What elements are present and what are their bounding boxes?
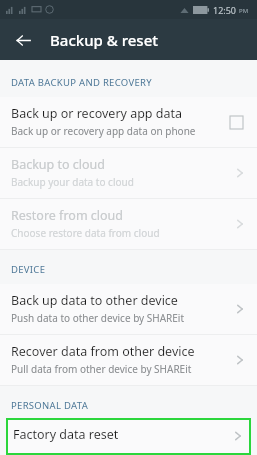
button[interactable]: Back up or recovery app data — [0, 97, 257, 147]
button[interactable]: Back up or recovery app data toggle — [225, 111, 247, 133]
staticText: 12:50 — [213, 4, 237, 16]
button[interactable]: Back up data to other device — [0, 284, 257, 334]
staticText: Back up or recovery app data on phone — [11, 124, 196, 138]
staticText: DATA BACKUP AND RECOVERY — [11, 76, 152, 89]
staticText: Back up data to other device — [11, 292, 178, 309]
staticText: Push data to other device by SHAREit — [11, 311, 185, 325]
button[interactable]: Factory data reset — [6, 418, 251, 455]
staticText: Recover data from other device — [11, 343, 195, 360]
staticText: Pull data from other device by SHAREit — [11, 362, 192, 376]
button[interactable]: Back — [9, 26, 37, 54]
staticText: Restore from cloud — [11, 207, 124, 224]
staticText: PM — [239, 7, 249, 15]
staticText: Backup your data to cloud — [11, 175, 134, 189]
button: Backup to cloud — [0, 148, 257, 198]
staticText: Back up or recovery app data — [11, 105, 183, 122]
staticText: DEVICE — [11, 263, 46, 276]
button: Restore from cloud — [0, 199, 257, 249]
staticText: Factory data reset — [13, 426, 119, 443]
button[interactable]: Recover data from other device — [0, 335, 257, 385]
staticText: Choose restore data from cloud — [11, 226, 160, 240]
staticText: Backup to cloud — [11, 156, 106, 173]
staticText: Backup & reset — [50, 30, 159, 50]
staticText: PERSONAL DATA — [11, 399, 89, 412]
